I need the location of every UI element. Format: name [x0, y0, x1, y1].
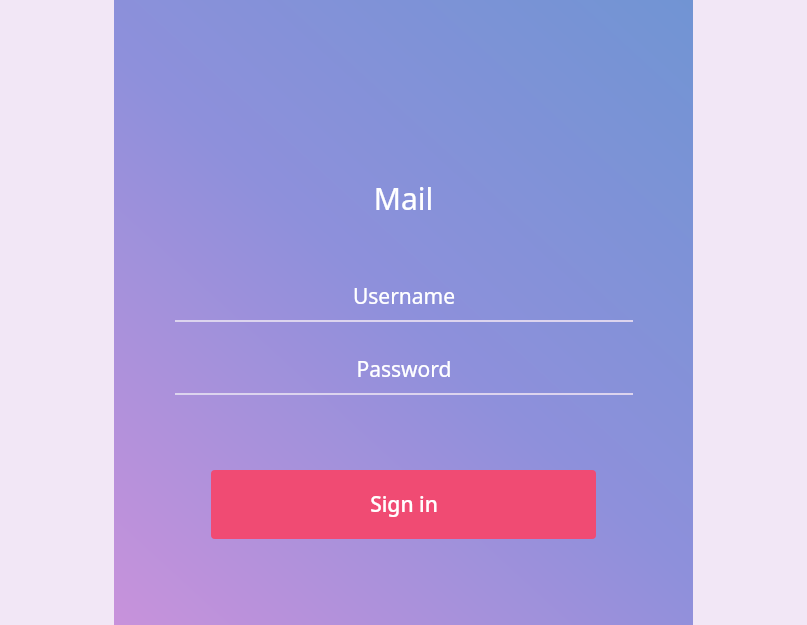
- button[interactable]: Sign in: [211, 470, 596, 539]
- button[interactable]: Username: [175, 276, 633, 322]
- staticText: Password: [175, 355, 633, 384]
- staticText: Mail: [114, 178, 693, 219]
- staticText: Sign in: [370, 490, 438, 519]
- button[interactable]: Password: [175, 349, 633, 395]
- staticText: Username: [175, 282, 633, 311]
